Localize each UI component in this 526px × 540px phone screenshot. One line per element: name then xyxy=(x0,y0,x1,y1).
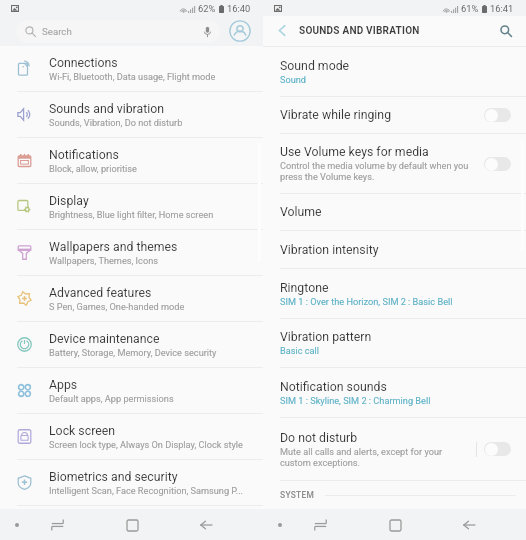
button[interactable]: Search xyxy=(493,16,519,46)
button[interactable]: Home xyxy=(383,513,407,537)
staticText: Vibration pattern xyxy=(280,330,372,344)
staticText: Block, allow, prioritise xyxy=(49,163,137,174)
staticText: Wallpapers and themes xyxy=(49,240,178,254)
button[interactable]: Do not disturb xyxy=(263,418,526,481)
button[interactable]: Biometrics and security xyxy=(0,460,263,506)
button[interactable]: Hide keyboard xyxy=(272,517,288,533)
staticText: SYSTEM xyxy=(280,490,315,500)
button[interactable]: Volume xyxy=(263,194,526,231)
button[interactable]: Navigate up xyxy=(265,16,298,46)
staticText: Lock screen xyxy=(49,424,116,438)
staticText: Sound mode xyxy=(280,59,350,73)
staticText: SOUNDS AND VIBRATION xyxy=(299,25,420,37)
staticText: Screen lock type, Always On Display, Clo… xyxy=(49,439,243,450)
button[interactable]: Home xyxy=(120,513,144,537)
staticText: 62% xyxy=(198,3,216,14)
staticText: 61% xyxy=(461,3,479,14)
button[interactable]: Advanced features xyxy=(0,276,263,322)
button[interactable]: Recents xyxy=(308,513,332,537)
staticText: Wallpapers, Themes, Icons xyxy=(49,255,158,266)
staticText: Sound xyxy=(280,74,307,85)
staticText: Sounds, Vibration, Do not disturb xyxy=(49,117,183,128)
button[interactable]: Hide keyboard xyxy=(9,517,25,533)
staticText: Basic call xyxy=(280,345,320,356)
staticText: Volume xyxy=(280,205,322,219)
button[interactable]: Device maintenance xyxy=(0,322,263,368)
button[interactable]: Sounds and vibration xyxy=(0,92,263,138)
button[interactable]: Use Volume keys for media xyxy=(263,134,526,194)
staticText: Intelligent Scan, Face Recognition, Sams… xyxy=(49,485,243,496)
staticText: Sounds and vibration xyxy=(49,102,164,116)
button[interactable]: Wallpapers and themes xyxy=(0,230,263,276)
staticText: Brightness, Blue light filter, Home scre… xyxy=(49,209,214,220)
staticText: Device maintenance xyxy=(49,332,160,346)
staticText: Notifications xyxy=(49,148,119,162)
staticText: Default apps, App permissions xyxy=(49,393,174,404)
button[interactable]: Use Volume keys for media xyxy=(484,157,511,171)
staticText: Display xyxy=(49,194,89,208)
button[interactable]: Samsung account xyxy=(228,19,252,43)
staticText: SIM 1 : Over the Horizon, SIM 2 : Basic … xyxy=(280,296,453,307)
staticText: Connections xyxy=(49,56,118,70)
staticText: 16:40 xyxy=(227,3,251,14)
button[interactable]: Back xyxy=(457,513,481,537)
staticText: SIM 1 : Skyline, SIM 2 : Charming Bell xyxy=(280,395,431,406)
button[interactable]: Vibration intensity xyxy=(263,231,526,269)
staticText: Notification sounds xyxy=(280,380,387,394)
button[interactable]: Display xyxy=(0,184,263,230)
button[interactable]: Ringtone xyxy=(263,269,526,319)
button[interactable]: Vibration pattern xyxy=(263,319,526,368)
staticText: Use Volume keys for media xyxy=(280,145,429,159)
button[interactable]: Notification sounds xyxy=(263,368,526,418)
button[interactable]: Vibrate while ringing xyxy=(263,97,526,134)
staticText: Advanced features xyxy=(49,286,152,300)
button[interactable]: Do not disturb xyxy=(484,442,511,456)
staticText: Vibrate while ringing xyxy=(280,108,392,122)
staticText: S Pen, Games, One-handed mode xyxy=(49,301,185,312)
button[interactable]: Back xyxy=(194,513,218,537)
staticText: Battery, Storage, Memory, Device securit… xyxy=(49,347,217,358)
button[interactable]: Recents xyxy=(45,513,69,537)
button[interactable]: Notifications xyxy=(0,138,263,184)
button[interactable]: Lock screen xyxy=(0,414,263,460)
staticText: Biometrics and security xyxy=(49,470,178,484)
button[interactable]: Sound mode xyxy=(263,47,526,97)
staticText: Ringtone xyxy=(280,281,329,295)
button[interactable]: Connections xyxy=(0,46,263,92)
staticText: Control the media volume by default when… xyxy=(280,160,469,182)
button[interactable]: Apps xyxy=(0,368,263,414)
staticText: Search xyxy=(42,26,72,37)
staticText: 16:41 xyxy=(490,3,514,14)
staticText: Mute all calls and alerts, except for yo… xyxy=(280,446,443,468)
button[interactable]: Vibrate while ringing xyxy=(484,108,511,122)
staticText: Apps xyxy=(49,378,78,392)
button[interactable]: Search xyxy=(17,20,220,43)
staticText: Vibration intensity xyxy=(280,243,379,257)
staticText: Wi-Fi, Bluetooth, Data usage, Flight mod… xyxy=(49,71,216,82)
staticText: Do not disturb xyxy=(280,431,358,445)
